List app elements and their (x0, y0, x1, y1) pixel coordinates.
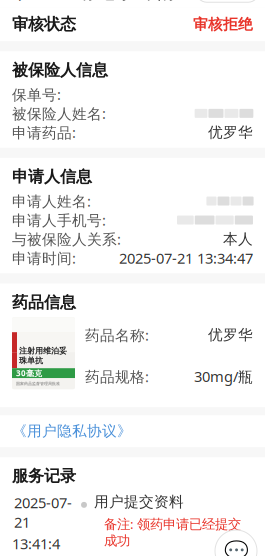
staticText: 药品信息 (12, 292, 76, 312)
staticText: 审核拒绝 (193, 15, 253, 33)
staticText: 💬 (223, 540, 248, 556)
button[interactable]: 关闭 (229, 0, 259, 2)
staticText: 30mg/瓶 (194, 367, 253, 386)
staticText: 30毫克 (16, 368, 42, 378)
staticText: 服务记录 (12, 466, 76, 486)
staticText: 备注: 领药申请已经提交成功 (104, 515, 241, 549)
staticText: 13:41:42 (12, 534, 60, 556)
button[interactable]: 《用户隐私协议》 (0, 415, 265, 447)
staticText: 用户提交资料 (94, 493, 184, 511)
staticText: 被保险人信息 (12, 60, 108, 80)
staticText: ‹ (13, 0, 22, 11)
staticText: 审核状态 (12, 14, 76, 34)
staticText: 《用户隐私协议》 (12, 422, 132, 440)
staticText: 申请人手机号: (12, 210, 106, 230)
staticText: 被保险人姓名: (12, 104, 106, 123)
staticText: 药品名称: (85, 325, 149, 345)
staticText: 2025-07-21 (14, 493, 72, 532)
staticText: 国家药品监督管理局批准 (16, 381, 60, 386)
button[interactable]: 更多 (196, 0, 228, 2)
staticText: 与被保险人关系: (12, 229, 121, 249)
staticText: 保单号: (12, 85, 61, 104)
staticText: 2025-07-21 13:34:47 (119, 248, 253, 268)
staticText: 申请记录详情 (56, 0, 176, 4)
button[interactable]: 返回 (0, 0, 36, 6)
staticText: 药品规格: (85, 367, 149, 386)
button[interactable]: 客服 (215, 530, 257, 556)
staticText: 申请药品: (12, 123, 76, 142)
staticText: 注射用维泊妥珠单抗 (19, 346, 67, 365)
staticText: 申请人姓名: (12, 191, 91, 211)
staticText: 申请人信息 (12, 167, 92, 187)
staticText: 优罗华 (208, 123, 253, 141)
staticText: 本人 (223, 230, 253, 248)
staticText: 申请时间: (12, 248, 76, 268)
staticText: 优罗华® (19, 367, 38, 375)
staticText: 优罗华 (208, 326, 253, 344)
